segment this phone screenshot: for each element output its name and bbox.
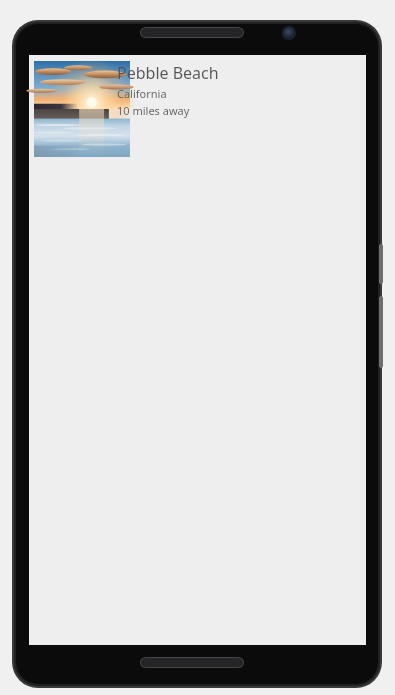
other: Pebble Beach photo	[34, 61, 130, 157]
staticText: California	[117, 86, 167, 101]
staticText: 10 miles away	[117, 103, 190, 118]
button[interactable]: Pebble Beach photo	[34, 61, 310, 157]
staticText: Pebble Beach	[117, 62, 219, 84]
